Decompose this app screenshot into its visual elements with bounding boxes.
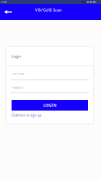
staticText: Username bbox=[12, 72, 25, 75]
staticText: VB/GdB Scan bbox=[35, 7, 62, 12]
staticText: Click here to sign up bbox=[12, 114, 42, 117]
button[interactable]: Back bbox=[0, 4, 16, 20]
button[interactable]: Click here to sign up bbox=[12, 114, 42, 117]
staticText: LOGIN bbox=[43, 103, 56, 108]
staticText: Login bbox=[12, 54, 21, 59]
staticText: Password bbox=[12, 86, 24, 89]
button[interactable]: LOGIN bbox=[12, 100, 88, 111]
